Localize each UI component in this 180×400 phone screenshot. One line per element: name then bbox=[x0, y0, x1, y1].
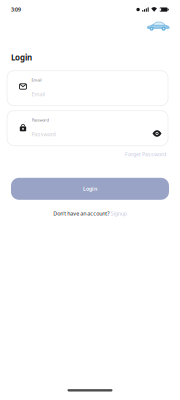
button[interactable]: Show password bbox=[150, 120, 164, 136]
staticText: Login bbox=[11, 52, 32, 63]
staticText: Signup bbox=[111, 210, 127, 217]
staticText: Password bbox=[31, 131, 55, 138]
button[interactable]: Forget Password bbox=[123, 149, 168, 160]
button[interactable]: Login bbox=[11, 178, 169, 200]
button[interactable]: Don't have an account? bbox=[53, 210, 127, 217]
staticText: Email bbox=[31, 77, 41, 83]
staticText: Forget Password bbox=[125, 151, 166, 158]
staticText: Email bbox=[31, 91, 44, 98]
staticText: Password bbox=[31, 117, 48, 123]
staticText: Login bbox=[83, 185, 97, 192]
staticText: Don't have an account? bbox=[53, 210, 109, 217]
staticText: 3:09 bbox=[11, 6, 21, 13]
